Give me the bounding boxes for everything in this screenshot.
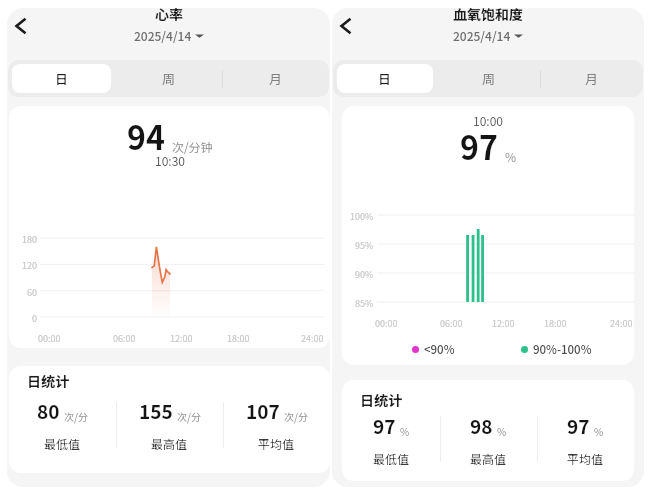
staticText: 06:00	[113, 332, 136, 345]
staticText: 次/分	[284, 409, 308, 423]
staticText: 120	[22, 259, 37, 269]
staticText: 97	[567, 412, 590, 440]
staticText: 85%	[355, 297, 374, 307]
button[interactable]: Back	[7, 11, 36, 41]
staticText: 日统计	[360, 390, 402, 410]
staticText: 月	[269, 69, 283, 88]
button[interactable]: 周	[437, 60, 540, 97]
staticText: 18:00	[227, 332, 250, 345]
staticText: 周	[162, 69, 176, 88]
button[interactable]: Back	[332, 11, 361, 41]
staticText: 00:00	[38, 332, 61, 345]
staticText: 最低值	[373, 450, 410, 465]
staticText: 24:00	[610, 317, 633, 330]
staticText: 12:00	[170, 332, 193, 345]
button[interactable]: 日	[337, 64, 433, 93]
staticText: 60	[27, 286, 37, 296]
staticText: 180	[22, 233, 37, 243]
staticText: 97	[373, 412, 396, 440]
button[interactable]: 日	[12, 64, 111, 93]
staticText: 00:00	[375, 317, 398, 330]
button[interactable]: 月	[222, 60, 329, 97]
button[interactable]: 周	[115, 60, 222, 97]
staticText: 日统计	[27, 371, 69, 391]
staticText: %	[505, 148, 517, 165]
staticText: 最低值	[44, 435, 81, 452]
staticText: %	[594, 424, 604, 438]
staticText: 月	[585, 69, 599, 88]
staticText: 18:00	[544, 317, 567, 330]
staticText: 周	[482, 69, 496, 88]
staticText: 心率	[155, 8, 183, 24]
button[interactable]: 月	[540, 60, 643, 97]
staticText: 94	[127, 113, 165, 159]
staticText: 10:30	[155, 152, 185, 169]
staticText: 2025/4/14	[134, 27, 192, 44]
staticText: 次/分	[64, 409, 88, 423]
staticText: 155	[139, 397, 173, 425]
staticText: 平均值	[567, 450, 604, 465]
staticText: 平均值	[258, 435, 295, 452]
staticText: 10:00	[473, 112, 503, 129]
staticText: 次/分钟	[172, 138, 213, 155]
staticText: 12:00	[492, 317, 515, 330]
staticText: %	[497, 424, 507, 438]
staticText: %	[400, 424, 410, 438]
staticText: 98	[470, 412, 493, 440]
staticText: <90%	[424, 341, 455, 358]
staticText: 90%-100%	[533, 341, 592, 358]
staticText: 95%	[355, 239, 374, 249]
staticText: 24:00	[301, 332, 324, 345]
staticText: 80	[37, 397, 60, 425]
staticText: 最高值	[470, 450, 507, 465]
staticText: 次/分	[177, 409, 201, 423]
staticText: 97	[460, 123, 498, 169]
staticText: 100%	[350, 210, 374, 220]
staticText: 0	[32, 312, 37, 322]
staticText: 107	[246, 397, 280, 425]
staticText: 90%	[355, 268, 374, 278]
staticText: 2025/4/14	[453, 27, 511, 44]
staticText: 06:00	[440, 317, 463, 330]
staticText: 日	[378, 69, 392, 88]
staticText: 血氧饱和度	[453, 8, 523, 24]
staticText: 日	[55, 69, 69, 88]
staticText: 最高值	[151, 435, 188, 452]
